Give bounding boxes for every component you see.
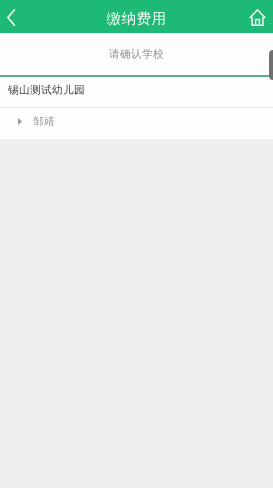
staticText: 请确认学校 <box>109 47 164 60</box>
button[interactable]: Home <box>232 0 273 33</box>
button[interactable]: 锡山测试幼儿园 <box>0 77 273 107</box>
staticText: 锡山测试幼儿园 <box>8 83 85 96</box>
staticText: 邹靖 <box>33 115 55 128</box>
button[interactable]: Back <box>0 0 41 33</box>
staticText: 缴纳费用 <box>106 9 166 27</box>
button[interactable]: 邹靖 <box>0 108 273 139</box>
